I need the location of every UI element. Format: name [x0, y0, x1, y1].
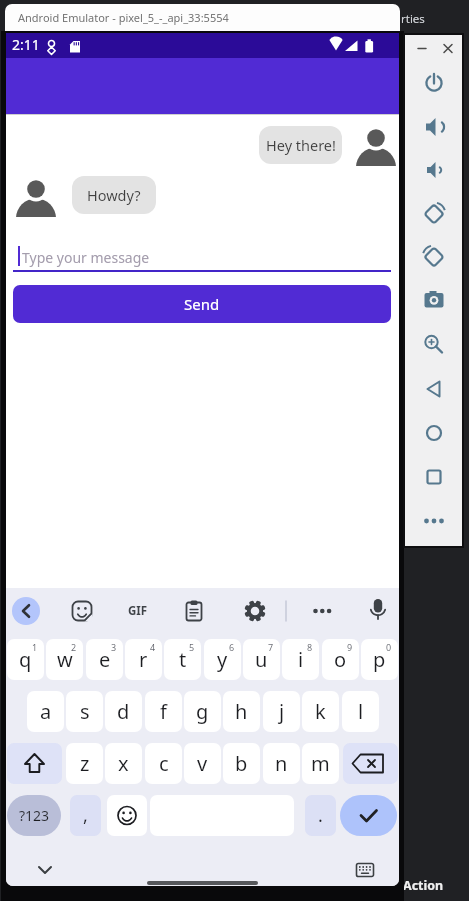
button[interactable]: Send — [13, 285, 391, 323]
button[interactable]: w — [46, 639, 83, 680]
staticText: w — [57, 646, 73, 673]
button[interactable]: p — [361, 639, 398, 680]
staticText: j — [279, 698, 285, 725]
staticText: Action — [403, 877, 444, 894]
button[interactable]: . — [305, 795, 336, 836]
button[interactable]: u — [243, 639, 280, 680]
button[interactable] — [414, 40, 430, 56]
staticText: e — [99, 646, 111, 673]
button[interactable] — [440, 40, 456, 56]
button[interactable]: q — [7, 639, 44, 680]
staticText: d — [117, 698, 130, 725]
button[interactable] — [416, 152, 452, 188]
button[interactable]: b — [223, 743, 260, 784]
button[interactable] — [120, 593, 156, 629]
button[interactable] — [107, 795, 147, 836]
button[interactable] — [416, 282, 452, 318]
staticText: b — [235, 750, 248, 777]
button[interactable]: i — [282, 639, 319, 680]
staticText: 1 — [32, 641, 38, 653]
button[interactable]: z — [66, 743, 103, 784]
staticText: c — [159, 750, 169, 777]
button[interactable]: k — [302, 691, 339, 732]
button[interactable] — [340, 795, 397, 836]
button[interactable]: r — [125, 639, 162, 680]
button[interactable]: d — [105, 691, 142, 732]
button[interactable] — [12, 597, 40, 625]
staticText: n — [275, 750, 288, 777]
button[interactable]: y — [204, 639, 241, 680]
button[interactable]: c — [145, 743, 182, 784]
button[interactable]: g — [184, 691, 221, 732]
button[interactable] — [234, 593, 270, 629]
staticText: g — [196, 698, 209, 725]
staticText: 8 — [307, 641, 313, 653]
staticText: q — [19, 646, 32, 673]
button[interactable]: e — [86, 639, 123, 680]
button[interactable]: Type your message — [13, 241, 391, 272]
button[interactable] — [416, 327, 452, 363]
staticText: Send — [184, 294, 220, 314]
staticText: 0 — [386, 641, 392, 653]
staticText: f — [160, 698, 167, 725]
staticText: Android Emulator - pixel_5_-_api_33:5554 — [18, 10, 229, 25]
button[interactable]: m — [302, 743, 339, 784]
button[interactable]: a — [27, 691, 64, 732]
button[interactable]: v — [184, 743, 221, 784]
button[interactable]: l — [342, 691, 379, 732]
button[interactable]: f — [145, 691, 182, 732]
button[interactable] — [176, 593, 212, 629]
button[interactable]: s — [66, 691, 103, 732]
staticText: p — [373, 646, 386, 673]
staticText: Howdy? — [87, 185, 141, 205]
button[interactable]: h — [223, 691, 260, 732]
staticText: k — [315, 698, 326, 725]
staticText: Hey there! — [266, 135, 336, 155]
staticText: 6 — [229, 641, 235, 653]
staticText: a — [40, 698, 52, 725]
staticText: 9 — [347, 641, 353, 653]
button[interactable] — [297, 593, 333, 629]
button[interactable]: t — [164, 639, 201, 680]
button[interactable]: x — [105, 743, 142, 784]
staticText: t — [179, 646, 187, 673]
staticText: rties — [401, 11, 425, 27]
staticText: u — [255, 646, 268, 673]
button[interactable] — [416, 239, 452, 275]
staticText: h — [235, 698, 248, 725]
button[interactable] — [343, 743, 398, 784]
staticText: 5 — [189, 641, 195, 653]
button[interactable] — [7, 743, 62, 784]
staticText: s — [80, 698, 90, 725]
staticText: r — [139, 646, 148, 673]
button[interactable] — [416, 196, 452, 232]
staticText: 2 — [71, 641, 77, 653]
button[interactable] — [360, 593, 396, 629]
button[interactable] — [416, 65, 452, 101]
staticText: 7 — [268, 641, 274, 653]
staticText: x — [118, 750, 129, 777]
staticText: y — [217, 646, 228, 673]
button[interactable]: ?123 — [7, 795, 61, 836]
staticText: i — [298, 646, 304, 673]
staticText: , — [83, 803, 88, 828]
staticText: 3 — [111, 641, 117, 653]
button[interactable] — [416, 109, 452, 145]
button[interactable] — [416, 503, 452, 539]
button[interactable] — [416, 415, 452, 451]
button[interactable] — [416, 459, 452, 495]
button[interactable]: j — [263, 691, 300, 732]
button[interactable]: o — [322, 639, 359, 680]
button[interactable]: , — [70, 795, 101, 836]
staticText: 2:11 — [12, 35, 40, 54]
staticText: o — [334, 646, 347, 673]
button[interactable] — [30, 855, 60, 881]
button[interactable] — [64, 593, 100, 629]
button[interactable] — [356, 855, 386, 881]
button[interactable] — [416, 371, 452, 407]
staticText: v — [197, 750, 208, 777]
button[interactable]: n — [263, 743, 300, 784]
staticText: m — [311, 750, 330, 777]
staticText: . — [318, 803, 323, 828]
